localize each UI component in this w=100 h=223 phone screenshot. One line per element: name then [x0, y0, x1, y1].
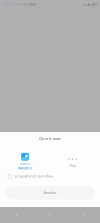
button[interactable]: Se souvenir de mon choix — [0, 172, 100, 180]
staticText: 10:31 — [1, 2, 10, 7]
staticText: 63 Ko/s — [11, 3, 22, 6]
button[interactable]: Plus — [50, 155, 95, 168]
staticText: Ouvrir avec — [39, 136, 61, 141]
staticText: Plus — [69, 164, 75, 168]
staticText: Lecteur — [20, 162, 30, 165]
staticText: Se souvenir de mon choix — [14, 175, 52, 178]
staticText: Annuler — [44, 191, 56, 195]
button[interactable]: Lecteur — [0, 153, 50, 170]
button[interactable]: Annuler — [5, 186, 94, 199]
staticText: Navigateur — [18, 166, 32, 170]
